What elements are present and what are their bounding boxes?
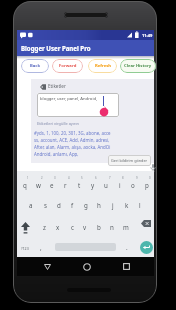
- button[interactable]: ,: [34, 238, 48, 256]
- staticText: d: [57, 201, 61, 209]
- staticText: Blogger User Panel Pro: [21, 44, 91, 52]
- staticText: blogger, user, panel, Android,: [40, 96, 98, 102]
- button[interactable]: Clear History: [120, 59, 156, 73]
- staticText: 8: [122, 176, 124, 180]
- staticText: Clear History: [124, 63, 152, 69]
- staticText: ss, account, ACE, Add, Admin, adresi,: [34, 137, 110, 143]
- button[interactable]: v: [78, 218, 92, 236]
- staticText: 11:49: [142, 33, 153, 38]
- staticText: o: [131, 181, 135, 189]
- button[interactable]: c: [65, 218, 79, 236]
- button[interactable]: b: [92, 218, 106, 236]
- staticText: Back: [30, 63, 41, 69]
- button[interactable]: [123, 263, 130, 270]
- button[interactable]: p: [140, 176, 154, 194]
- staticText: z: [43, 223, 46, 231]
- staticText: a: [29, 201, 33, 209]
- button[interactable]: Refresh: [88, 59, 117, 73]
- button[interactable]: e: [45, 176, 59, 194]
- button[interactable]: t: [72, 176, 86, 194]
- staticText: u: [104, 181, 108, 189]
- staticText: e: [50, 181, 54, 189]
- staticText: #yds, 1, 100, 20, 301, 3G, abone, acce: [34, 130, 111, 136]
- staticText: x: [56, 223, 60, 231]
- staticText: ,: [40, 243, 42, 251]
- staticText: Android, anlamı, App,: [34, 151, 79, 157]
- staticText: 3: [54, 176, 56, 180]
- button[interactable]: u: [99, 176, 113, 194]
- button[interactable]: [21, 222, 30, 234]
- button[interactable]: a: [24, 196, 38, 214]
- button[interactable]: Back: [21, 59, 49, 73]
- staticText: 5: [81, 176, 83, 180]
- button[interactable]: [37, 93, 119, 117]
- button[interactable]: x: [51, 218, 65, 236]
- button[interactable]: .: [120, 238, 134, 256]
- staticText: Etiketler: [48, 83, 66, 89]
- button[interactable]: i: [113, 176, 127, 194]
- staticText: 1: [27, 176, 29, 180]
- button[interactable]: y: [86, 176, 100, 194]
- staticText: 7: [109, 176, 111, 180]
- staticText: k: [125, 201, 129, 209]
- button[interactable]: m: [119, 218, 133, 236]
- staticText: t: [78, 181, 81, 189]
- staticText: Forward: [59, 63, 77, 69]
- staticText: c: [71, 223, 74, 231]
- button[interactable]: [141, 220, 151, 227]
- button[interactable]: k: [120, 196, 134, 214]
- staticText: j: [112, 201, 114, 209]
- button[interactable]: n: [105, 218, 119, 236]
- staticText: ?123: [21, 246, 29, 251]
- staticText: p: [145, 181, 149, 189]
- button[interactable]: Forward: [52, 59, 83, 73]
- staticText: After, alan, Alarm, alışa, aocka, AndOi: [34, 144, 111, 150]
- staticText: g: [84, 201, 88, 209]
- staticText: v: [83, 223, 87, 231]
- button[interactable]: r: [58, 176, 72, 194]
- button[interactable]: [83, 263, 91, 271]
- staticText: w: [36, 181, 41, 189]
- button[interactable]: d: [52, 196, 66, 214]
- button[interactable]: h: [92, 196, 106, 214]
- button[interactable]: l: [133, 196, 147, 214]
- button[interactable]: z: [37, 218, 51, 236]
- button[interactable]: j: [106, 196, 120, 214]
- staticText: Refresh: [95, 63, 111, 69]
- staticText: Geri bildirim gönder: [111, 158, 148, 163]
- staticText: n: [110, 223, 114, 231]
- staticText: r: [64, 181, 67, 189]
- staticText: s: [44, 201, 47, 209]
- button[interactable]: [140, 241, 153, 254]
- button[interactable]: [44, 264, 51, 270]
- button[interactable]: g: [79, 196, 93, 214]
- staticText: h: [97, 201, 101, 209]
- staticText: b: [97, 223, 101, 231]
- button[interactable]: w: [31, 176, 45, 194]
- staticText: 0: [149, 176, 151, 180]
- staticText: 6: [95, 176, 97, 180]
- staticText: m: [123, 223, 129, 231]
- staticText: .: [126, 243, 128, 251]
- staticText: f: [71, 201, 74, 209]
- staticText: i: [119, 181, 121, 189]
- button[interactable]: s: [38, 196, 52, 214]
- staticText: Etiketleri virgülle ayırın: [37, 121, 79, 126]
- staticText: 4: [68, 176, 70, 180]
- staticText: q: [23, 181, 27, 189]
- button[interactable]: Geri bildirim gönder: [108, 155, 151, 166]
- staticText: l: [139, 201, 141, 209]
- staticText: y: [91, 181, 95, 189]
- staticText: 9: [136, 176, 138, 180]
- staticText: 2: [41, 176, 43, 180]
- button[interactable]: f: [65, 196, 79, 214]
- button[interactable]: q: [18, 176, 32, 194]
- button[interactable]: o: [126, 176, 140, 194]
